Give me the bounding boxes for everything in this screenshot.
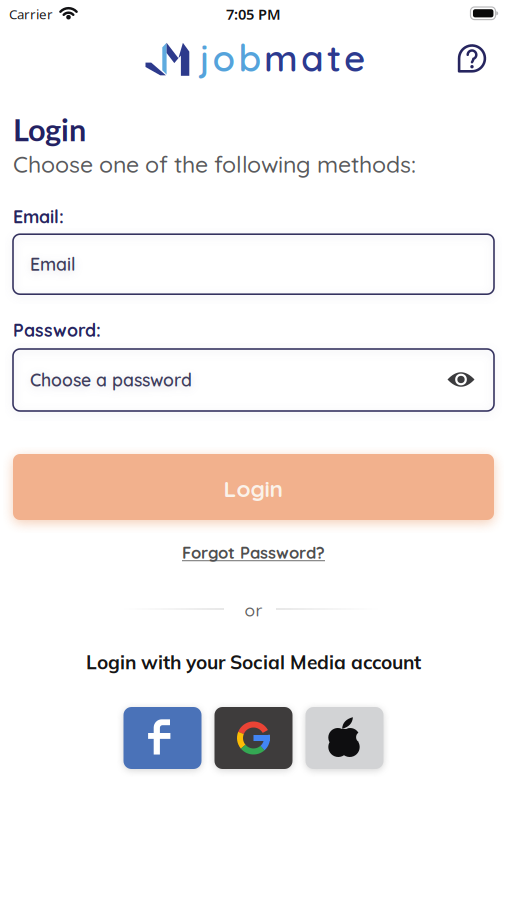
- staticText: job: [199, 35, 261, 81]
- staticText: Login: [13, 111, 86, 148]
- button[interactable]: Email: [13, 234, 494, 294]
- staticText: Login with your Social Media account: [86, 650, 421, 674]
- button[interactable]: Login with Apple: [305, 707, 383, 769]
- staticText: Forgot Password?: [182, 542, 325, 563]
- button[interactable]: Choose a password: [13, 349, 494, 411]
- staticText: mate: [264, 35, 365, 81]
- staticText: Choose a password: [30, 369, 192, 391]
- button[interactable]: Login with Facebook: [123, 707, 201, 769]
- staticText: Carrier: [9, 5, 53, 23]
- staticText: or: [244, 599, 262, 621]
- staticText: 7:05 PM: [226, 4, 281, 24]
- button[interactable]: Show password: [446, 369, 476, 389]
- staticText: Email:: [13, 205, 64, 228]
- staticText: Password:: [13, 319, 101, 341]
- button[interactable]: Help: [453, 40, 490, 77]
- staticText: Email: [30, 253, 76, 275]
- button[interactable]: Forgot Password?: [174, 542, 333, 563]
- staticText: Choose one of the following methods:: [13, 150, 416, 178]
- staticText: Login: [223, 474, 283, 503]
- button[interactable]: Login: [13, 454, 494, 520]
- button[interactable]: Login with Google: [214, 707, 292, 769]
